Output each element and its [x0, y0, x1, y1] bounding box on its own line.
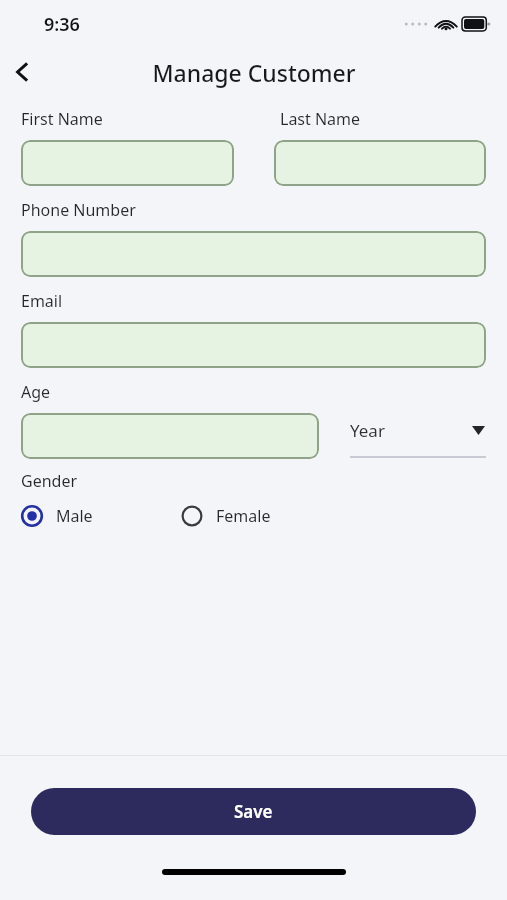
staticText: Gender: [21, 470, 78, 492]
staticText: Year: [350, 419, 385, 442]
staticText: Female: [216, 505, 271, 527]
button[interactable]: [21, 140, 234, 186]
staticText: Manage Customer: [152, 57, 356, 88]
staticText: Email: [21, 290, 63, 312]
button[interactable]: Male: [21, 505, 93, 527]
staticText: Phone Number: [21, 199, 136, 221]
button[interactable]: [21, 322, 486, 368]
button[interactable]: [21, 413, 319, 459]
button[interactable]: [21, 231, 486, 277]
staticText: 9:36: [44, 12, 80, 37]
staticText: Age: [21, 381, 51, 403]
button[interactable]: Year: [350, 413, 486, 458]
button[interactable]: [274, 140, 486, 186]
staticText: Save: [234, 800, 273, 823]
button[interactable]: Save: [31, 788, 476, 835]
staticText: First Name: [21, 108, 103, 130]
staticText: Last Name: [280, 108, 361, 130]
button[interactable]: Back: [0, 50, 44, 94]
staticText: Male: [56, 505, 93, 527]
button[interactable]: Female: [181, 505, 271, 527]
